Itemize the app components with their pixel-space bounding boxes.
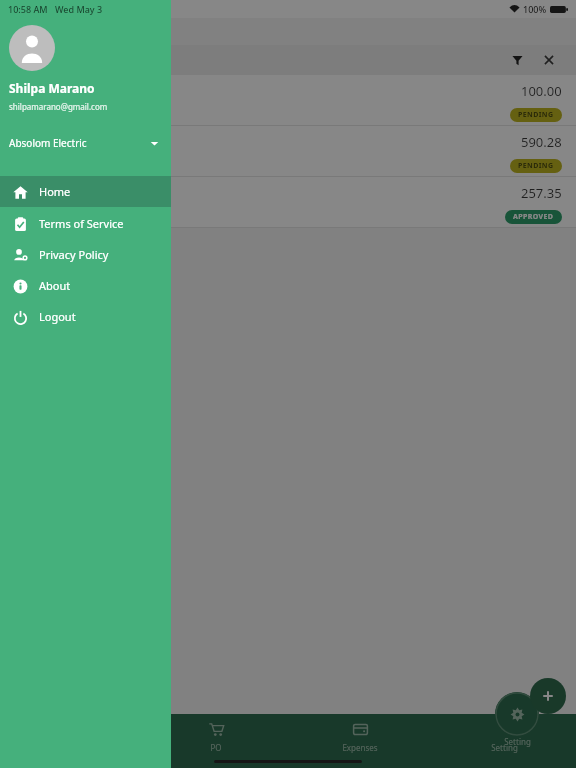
button[interactable]: Logout	[0, 301, 171, 332]
button[interactable]: Add	[530, 678, 566, 714]
staticText: APPROVED	[513, 212, 554, 222]
staticText: Setting	[491, 742, 518, 753]
button[interactable]	[0, 0, 576, 768]
staticText: 10:58 AM	[8, 3, 48, 15]
button[interactable]: About	[0, 270, 171, 301]
staticText: PO	[210, 742, 222, 753]
staticText: Shilpa Marano	[9, 80, 95, 96]
button[interactable]: Filter	[504, 47, 530, 73]
button[interactable]: Setting	[495, 692, 539, 736]
staticText: Setting	[504, 736, 531, 747]
button[interactable]: Privacy Policy	[0, 239, 171, 270]
staticText: PENDING	[518, 110, 554, 120]
button[interactable]: Clear	[536, 47, 562, 73]
staticText: Privacy Policy	[39, 247, 109, 262]
button[interactable]: 257.35	[0, 177, 576, 227]
staticText: 590.28	[521, 133, 562, 151]
staticText: 100%	[523, 3, 547, 15]
button[interactable]: 100.00	[0, 75, 576, 125]
staticText: Terms of Service	[39, 216, 124, 231]
button[interactable]: 590.28	[0, 126, 576, 176]
staticText: PENDING	[518, 161, 554, 171]
button[interactable]: Setting	[432, 714, 576, 768]
staticText: Expenses	[342, 742, 378, 753]
staticText: shilpamarano@gmail.com	[9, 101, 108, 112]
button[interactable]: Expenses	[288, 714, 432, 768]
staticText: Absolom Electric	[9, 136, 87, 150]
staticText: 100.00	[521, 82, 562, 100]
button[interactable]: Terms of Service	[0, 208, 171, 239]
staticText: About	[39, 278, 71, 293]
staticText: Logout	[39, 309, 76, 324]
staticText: Wed May 3	[55, 3, 103, 15]
staticText: 257.35	[521, 184, 562, 202]
button[interactable]: PO	[144, 714, 288, 768]
button[interactable]: Home	[0, 176, 171, 207]
button[interactable]: Absolom Electric	[0, 130, 171, 156]
staticText: Home	[39, 184, 71, 199]
